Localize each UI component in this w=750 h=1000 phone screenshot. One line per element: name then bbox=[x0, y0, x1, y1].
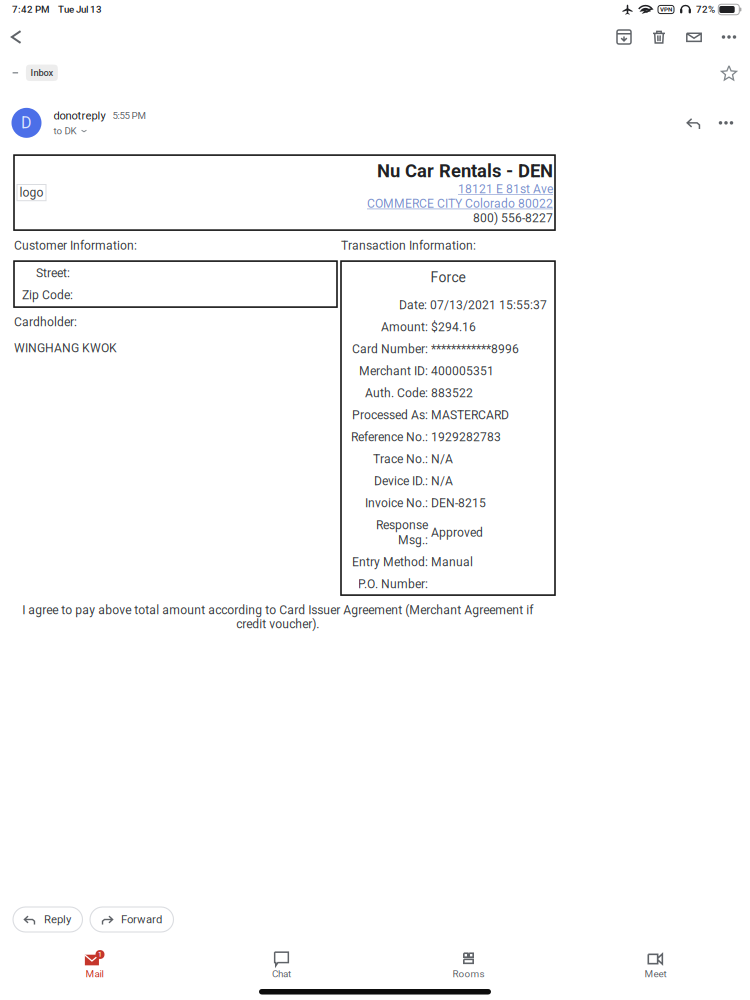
button[interactable]: Delete bbox=[641, 19, 676, 55]
staticText: Street: bbox=[36, 266, 70, 280]
staticText: Rooms bbox=[452, 968, 484, 980]
staticText: Manual bbox=[431, 555, 473, 569]
staticText: Nu Car Rentals - DEN bbox=[377, 160, 553, 182]
staticText: Trace No.: bbox=[373, 452, 428, 466]
staticText: VPN bbox=[660, 6, 672, 13]
staticText: 72% bbox=[696, 4, 715, 15]
staticText: 883522 bbox=[431, 386, 473, 400]
button[interactable]: Forward bbox=[90, 907, 173, 932]
staticText: Inbox bbox=[30, 67, 53, 78]
staticText: 1 bbox=[98, 951, 102, 958]
staticText: Meet bbox=[644, 968, 666, 980]
button[interactable]: Back bbox=[0, 19, 32, 55]
button[interactable]: 1 bbox=[1, 932, 188, 977]
staticText: $294.16 bbox=[431, 320, 476, 334]
staticText: Zip Code: bbox=[22, 288, 73, 302]
staticText: Date: bbox=[399, 298, 427, 312]
button[interactable]: Mark as unread bbox=[676, 19, 711, 55]
staticText: Merchant ID: bbox=[359, 364, 428, 378]
staticText: Response bbox=[376, 518, 428, 532]
staticText: 7:42 PM bbox=[12, 4, 50, 15]
button[interactable]: Reply bbox=[678, 106, 710, 140]
staticText: Approved bbox=[431, 525, 483, 540]
staticText: 800) 556-8227 bbox=[473, 211, 553, 225]
staticText: Processed As: bbox=[352, 408, 428, 422]
staticText: Cardholder: bbox=[14, 315, 77, 329]
staticText: Customer Information: bbox=[14, 238, 137, 253]
staticText: Auth. Code: bbox=[365, 386, 428, 400]
staticText: Forward bbox=[121, 913, 162, 926]
staticText: 18121 E 81st Ave bbox=[458, 182, 553, 196]
staticText: Force bbox=[430, 269, 465, 286]
button[interactable]: More options bbox=[711, 19, 746, 55]
button[interactable]: Chat bbox=[188, 932, 375, 977]
staticText: Invoice No.: bbox=[365, 496, 428, 510]
staticText: 07/13/2021 15:55:37 bbox=[430, 298, 547, 312]
button[interactable]: Star bbox=[714, 60, 744, 86]
staticText: Transaction Information: bbox=[341, 238, 476, 253]
button[interactable]: Rooms bbox=[375, 932, 562, 977]
staticText: D bbox=[21, 113, 32, 132]
staticText: Tue Jul 13 bbox=[58, 4, 102, 15]
button[interactable]: Meet bbox=[562, 932, 749, 977]
staticText: MASTERCARD bbox=[431, 408, 509, 422]
staticText: donotreply bbox=[53, 109, 105, 122]
staticText: logo bbox=[19, 185, 43, 200]
button[interactable]: More bbox=[710, 106, 742, 140]
staticText: Reference No.: bbox=[351, 430, 428, 444]
button[interactable]: Inbox bbox=[18, 64, 58, 81]
staticText: Chat bbox=[272, 968, 291, 980]
staticText: 1929282783 bbox=[431, 430, 501, 444]
staticText: Mail bbox=[85, 968, 103, 980]
staticText: Entry Method: bbox=[352, 555, 428, 569]
staticText: COMMERCE CITY Colorado 80022 bbox=[367, 196, 553, 211]
staticText: ************8996 bbox=[431, 342, 519, 356]
staticText: Device ID.: bbox=[374, 474, 428, 488]
staticText: 400005351 bbox=[431, 364, 494, 378]
staticText: WINGHANG KWOK bbox=[14, 341, 117, 355]
button[interactable]: Archive bbox=[606, 19, 641, 55]
staticText: Amount: bbox=[381, 320, 428, 334]
staticText: 5:55 PM bbox=[112, 110, 145, 121]
staticText: N/A bbox=[431, 452, 453, 466]
staticText: N/A bbox=[431, 474, 453, 488]
staticText: to DK bbox=[53, 125, 76, 137]
staticText: Reply bbox=[44, 913, 71, 926]
staticText: Msg.: bbox=[398, 533, 428, 547]
button[interactable]: Reply bbox=[13, 907, 82, 932]
staticText: DEN-8215 bbox=[431, 496, 486, 510]
staticText: I agree to pay above total amount accord… bbox=[22, 603, 533, 631]
staticText: Card Number: bbox=[352, 342, 428, 356]
staticText: P.O. Number: bbox=[358, 577, 428, 591]
